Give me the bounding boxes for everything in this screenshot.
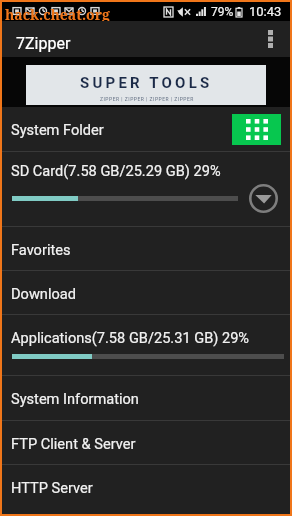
staticText: System Information [11,390,139,407]
staticText: SUPER TOOLS [80,74,213,92]
button[interactable]: FTP Client & Server [2,421,290,464]
staticText: Applications(7.58 GB/25.31 GB) 29% [11,329,250,346]
button[interactable]: Expand storage details [249,184,278,213]
staticText: hack.cheat.org [5,5,110,21]
staticText: Favorites [11,241,71,258]
button[interactable]: SUPER TOOLS [26,65,266,105]
button[interactable]: More options [250,21,290,57]
staticText: 10:43 [249,4,282,19]
staticText: Download [11,285,76,302]
staticText: System Folder [11,121,104,138]
staticText: SD Card(7.58 GB/25.29 GB) 29% [11,162,221,179]
staticText: HTTP Server [11,479,93,496]
button[interactable]: HTTP Server [2,465,290,508]
staticText: 79% [211,5,234,19]
button[interactable]: System Folder [2,107,290,151]
button[interactable]: Open file manager [232,114,281,145]
button[interactable]: Favorites [2,227,290,270]
button[interactable]: System Information [2,376,290,420]
button[interactable]: Download [2,271,290,314]
button[interactable]: Applications(7.58 GB/25.31 GB) 29% [2,315,290,375]
button[interactable]: SD Card(7.58 GB/25.29 GB) 29% [2,152,290,226]
staticText: FTP Client & Server [11,435,136,452]
staticText: 7Zipper [16,34,71,53]
staticText: ZIPPER | ZIPPER | ZIPPER | ZIPPER [100,96,194,102]
